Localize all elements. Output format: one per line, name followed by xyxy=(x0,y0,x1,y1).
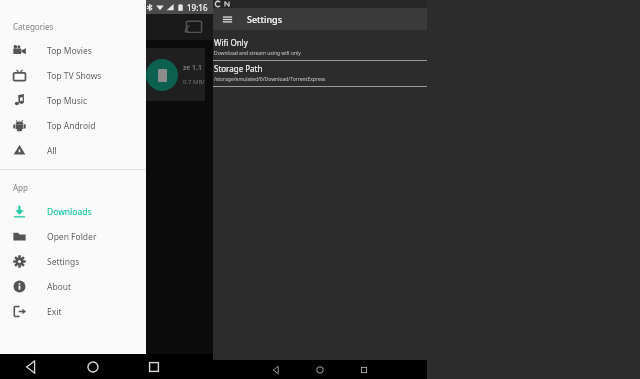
button[interactable]: Top Music xyxy=(0,88,146,113)
staticText: Exit xyxy=(47,306,62,318)
staticText: App xyxy=(13,182,28,193)
staticText: 0.7 MB/s xyxy=(183,78,205,86)
staticText: Open Folder xyxy=(47,231,97,243)
button[interactable]: Wifi Only xyxy=(213,35,427,61)
staticText: ze 1.1 GB xyxy=(183,63,205,73)
button[interactable]: All xyxy=(0,138,146,163)
staticText: All xyxy=(47,145,57,157)
button[interactable]: Recents xyxy=(357,363,371,377)
staticText: Download and stream using wifi only xyxy=(214,50,301,57)
button[interactable]: Cast xyxy=(185,18,203,36)
staticText: Top Music xyxy=(47,95,88,107)
button[interactable]: Top Android xyxy=(0,113,146,138)
button[interactable]: Back xyxy=(269,363,283,377)
button[interactable]: Open navigation xyxy=(222,14,233,25)
button[interactable]: ze 1.1 GB xyxy=(4,48,205,101)
staticText: 19:16 xyxy=(187,2,208,13)
staticText: Settings xyxy=(247,13,283,25)
button[interactable]: Recents xyxy=(143,356,165,378)
button[interactable]: Storage Path xyxy=(213,61,427,87)
staticText: Wifi Only xyxy=(214,37,248,48)
button[interactable]: Settings xyxy=(0,249,146,274)
button[interactable]: Back xyxy=(20,356,42,378)
staticText: Top Android xyxy=(47,120,96,132)
staticText: Top Movies xyxy=(47,45,92,57)
button[interactable]: Home xyxy=(82,356,104,378)
staticText: Downloads xyxy=(47,206,92,218)
button[interactable]: Open Folder xyxy=(0,224,146,249)
button[interactable]: Top TV Shows xyxy=(0,63,146,88)
staticText: About xyxy=(47,281,72,293)
button[interactable]: About xyxy=(0,274,146,299)
staticText: Settings xyxy=(47,256,80,268)
button[interactable]: Top Movies xyxy=(0,38,146,63)
button[interactable]: Home xyxy=(313,363,327,377)
staticText: Storage Path xyxy=(214,63,263,74)
button[interactable]: Exit xyxy=(0,299,146,324)
staticText: Categories xyxy=(13,21,54,32)
staticText: Top TV Shows xyxy=(47,70,102,82)
button[interactable]: Downloads xyxy=(0,199,146,224)
staticText: /storage/emulated/0/Download/TorrentExpr… xyxy=(214,76,326,83)
